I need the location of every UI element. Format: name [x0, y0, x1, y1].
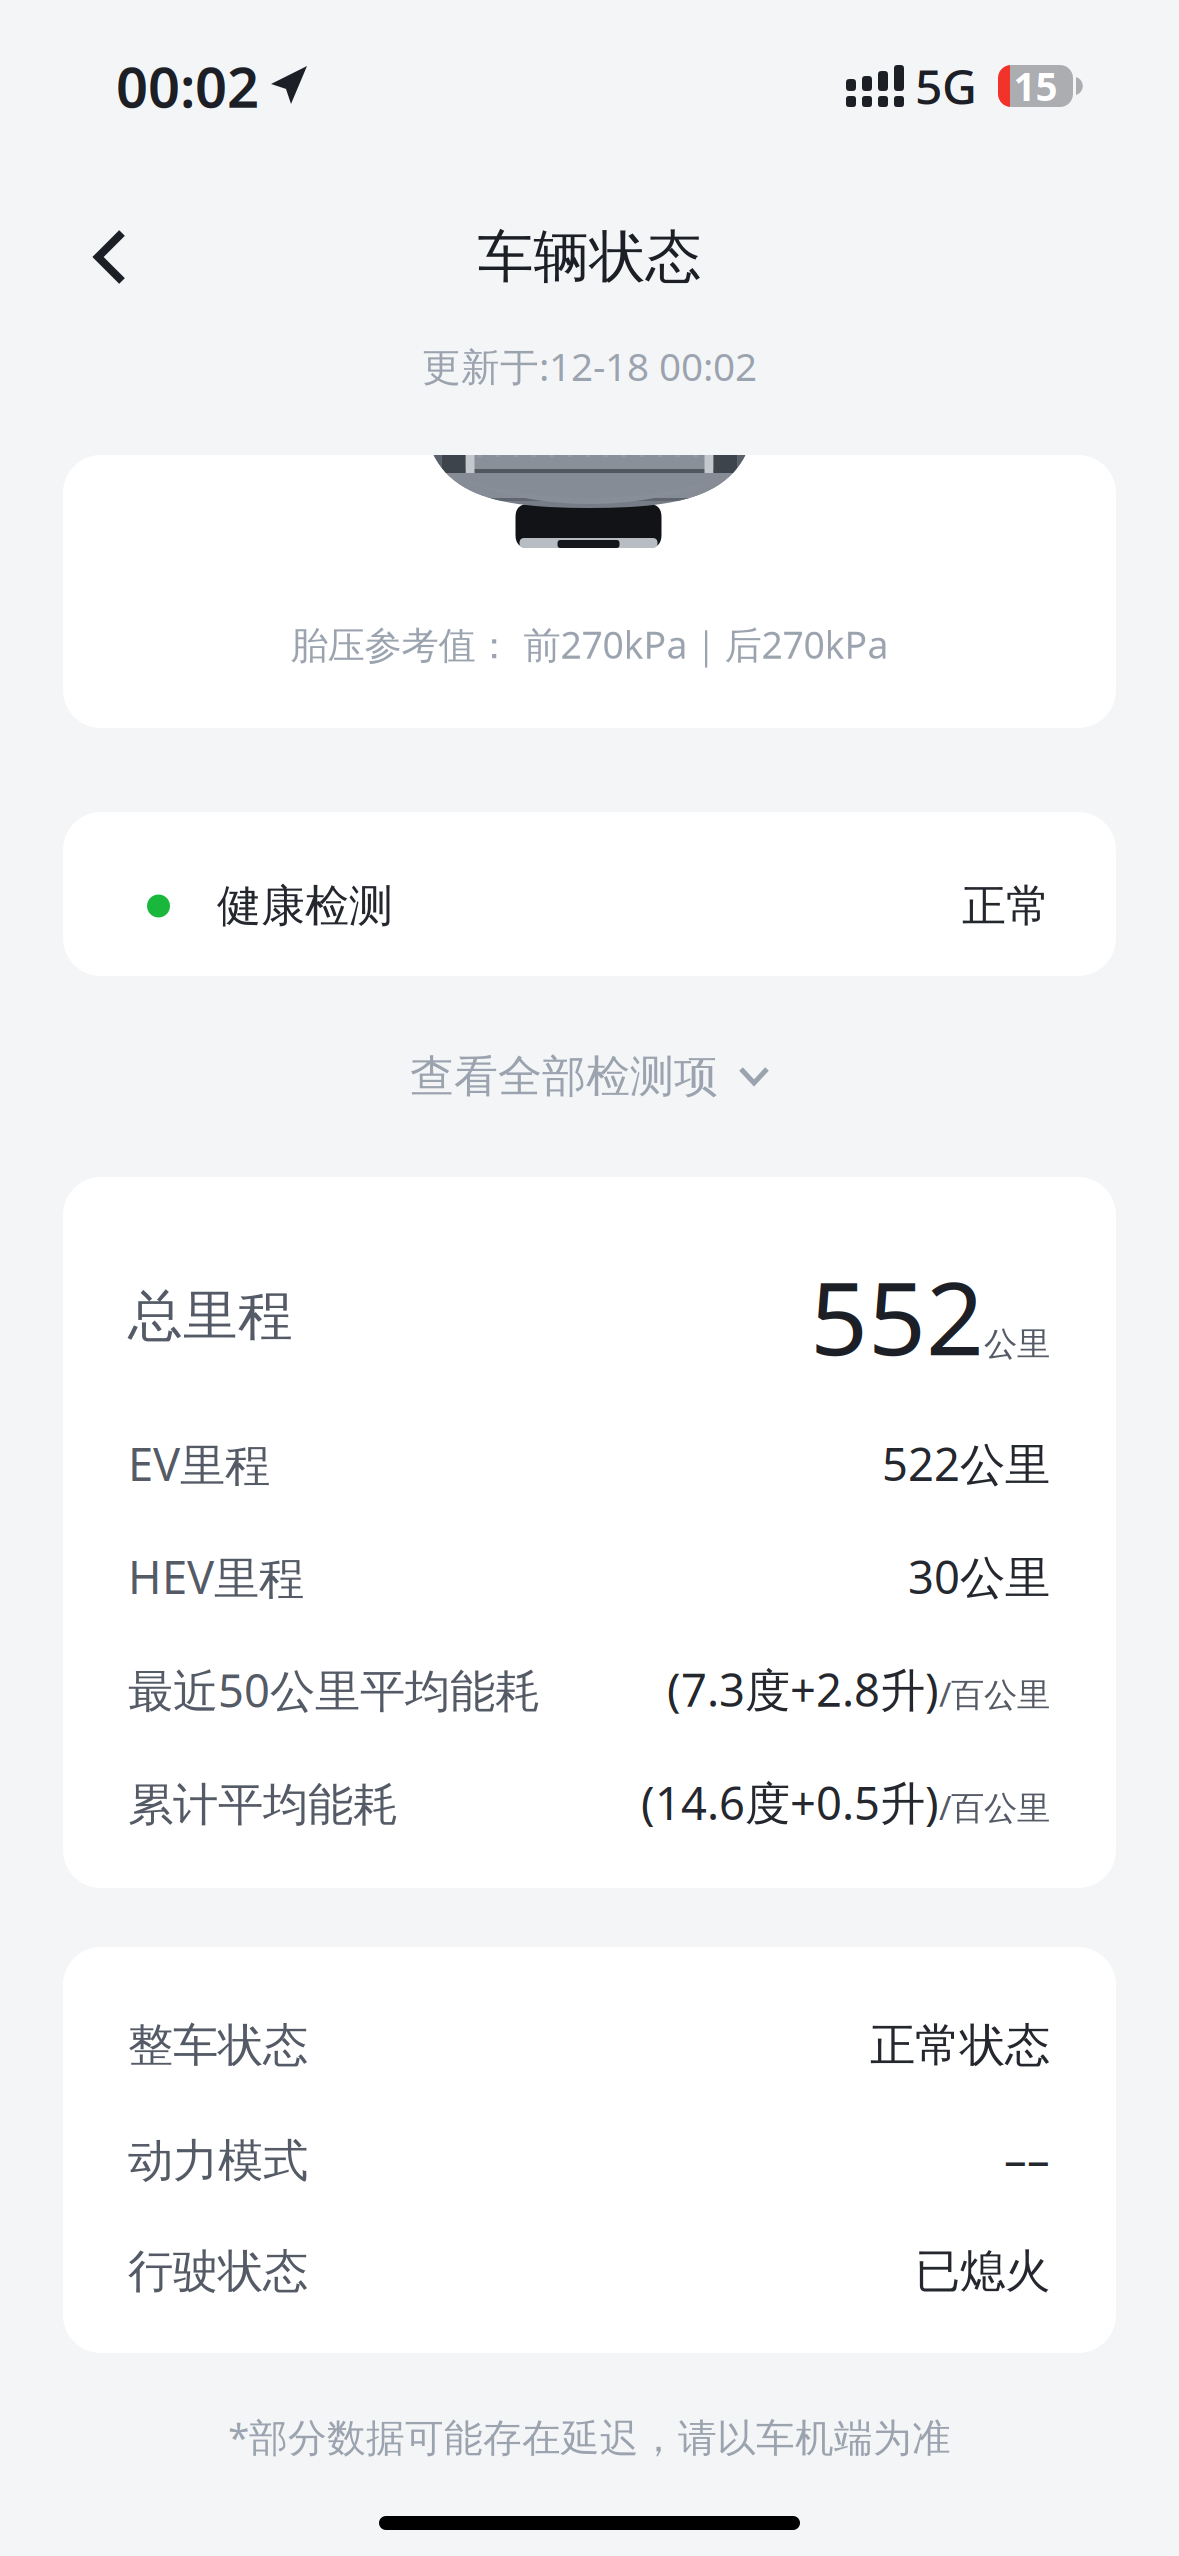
button[interactable]: 健康检测 [63, 812, 1116, 976]
staticText: 已熄火 [915, 2244, 1050, 2299]
staticText: 552 [810, 1249, 984, 1383]
staticText: (7.3度+2.8升) [667, 1659, 939, 1719]
staticText: 公里 [984, 1324, 1050, 1365]
button[interactable]: 查看全部检测项 [0, 976, 1179, 1177]
staticText: 行驶状态 [128, 2244, 308, 2299]
staticText: 动力模式 [128, 2133, 308, 2189]
staticText: –– [1004, 2128, 1050, 2188]
staticText: /百公里 [939, 1785, 1050, 1829]
staticText: 累计平均能耗 [128, 1777, 398, 1833]
staticText: EV里程 [128, 1433, 270, 1494]
staticText: 最近50公里平均能耗 [128, 1660, 540, 1720]
staticText: 5G [915, 54, 977, 118]
button[interactable]: 返回 [63, 197, 155, 317]
staticText: 15 [1013, 60, 1057, 112]
staticText: 30公里 [908, 1546, 1050, 1606]
staticText: 正常 [962, 879, 1050, 933]
staticText: 正常状态 [870, 2018, 1050, 2073]
staticText: HEV里程 [128, 1546, 304, 1607]
staticText: 查看全部检测项 [410, 1049, 718, 1103]
staticText: 健康检测 [217, 879, 393, 933]
staticText: /百公里 [939, 1672, 1050, 1716]
staticText: 总里程 [128, 1282, 293, 1349]
staticText: (14.6度+0.5升) [641, 1772, 939, 1832]
staticText: 00:02 [116, 49, 259, 123]
staticText: 车辆状态 [477, 223, 701, 291]
staticText: 整车状态 [128, 2018, 308, 2073]
staticText: 更新于:12-18 00:02 [422, 340, 757, 392]
staticText: *部分数据可能存在延迟，请以车机端为准 [228, 2411, 951, 2462]
staticText: 胎压参考值： 前270kPa｜后270kPa [290, 619, 888, 669]
staticText: 522公里 [882, 1433, 1050, 1493]
